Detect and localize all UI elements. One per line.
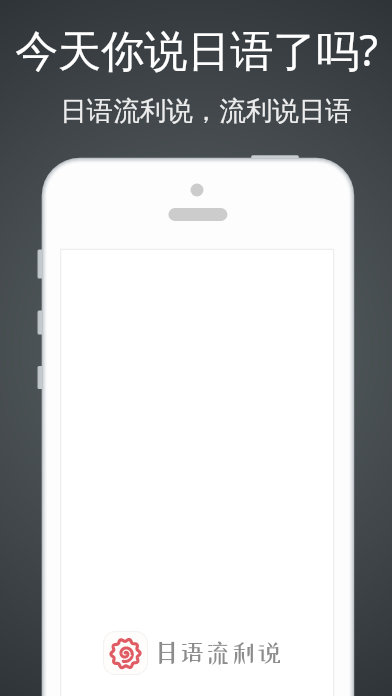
staticText: 今天你说日语了吗? <box>15 20 378 79</box>
staticText: 日语流利说，流利说日语 <box>60 94 352 127</box>
staticText: 日语流利说 <box>154 640 283 665</box>
button[interactable]: 日语流利说 <box>103 631 283 675</box>
